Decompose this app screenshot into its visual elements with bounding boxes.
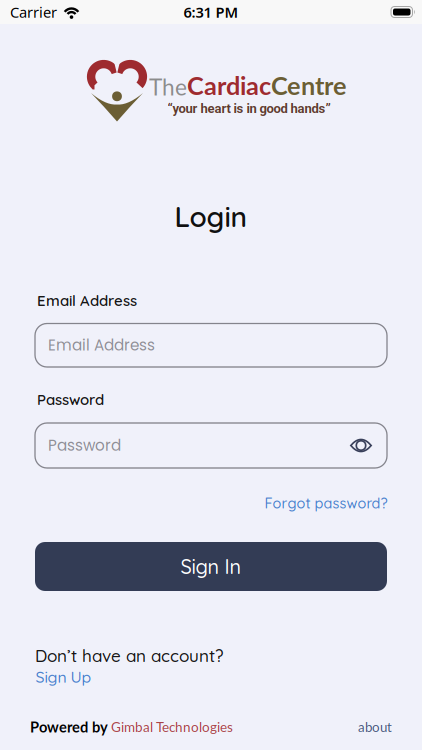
staticText: Sign Up: [35, 667, 91, 687]
staticText: Sign In: [180, 554, 241, 579]
staticText: “your heart is in good hands”: [167, 101, 330, 116]
staticText: Login: [174, 199, 247, 234]
staticText: Gimbal Technologies: [111, 719, 233, 735]
staticText: Email Address: [37, 291, 137, 310]
staticText: Email Address: [48, 335, 155, 356]
staticText: Password: [48, 435, 121, 456]
staticText: Password: [37, 390, 104, 409]
button[interactable]: [350, 438, 387, 453]
staticText: Don’t have an account?: [35, 645, 224, 666]
button[interactable]: Sign Up: [35, 667, 91, 687]
staticText: Centre: [271, 70, 347, 100]
staticText: Cardiac: [187, 70, 271, 100]
staticText: Powered by: [30, 718, 111, 736]
button[interactable]: about: [358, 719, 392, 735]
button[interactable]: Forgot password?: [264, 494, 387, 512]
button[interactable]: Sign In: [35, 542, 387, 591]
staticText: The: [149, 73, 187, 100]
staticText: Carrier: [10, 2, 57, 22]
staticText: Forgot password?: [264, 494, 387, 512]
staticText: 6:31 PM: [183, 2, 238, 22]
staticText: about: [358, 719, 392, 735]
